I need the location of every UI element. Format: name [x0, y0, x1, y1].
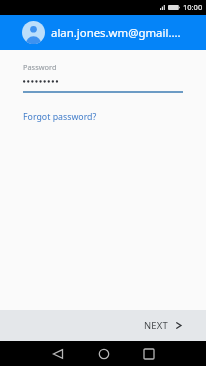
button[interactable]: Password [23, 62, 183, 93]
button[interactable]: Home [91, 341, 116, 366]
button[interactable]: Account [22, 21, 45, 44]
button[interactable]: Forgot password? [23, 111, 97, 123]
staticText: 10:00 [183, 2, 203, 12]
staticText: Forgot password? [23, 111, 97, 123]
staticText: alan.jones.wm@gmail.... [51, 25, 181, 41]
staticText: NEXT [144, 319, 168, 332]
button[interactable]: Back [45, 341, 70, 366]
button[interactable]: NEXT [130, 313, 206, 338]
button[interactable]: Recent apps [136, 341, 161, 366]
staticText: Password [23, 62, 57, 72]
